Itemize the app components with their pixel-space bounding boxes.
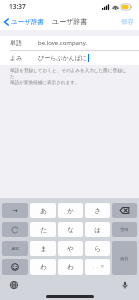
button[interactable]: ABC bbox=[2, 241, 28, 256]
button[interactable]: あ bbox=[30, 203, 56, 218]
button[interactable]: は bbox=[85, 222, 110, 237]
button[interactable]: EMOJI bbox=[2, 259, 28, 275]
button[interactable]: た bbox=[30, 222, 56, 237]
button[interactable]: か bbox=[58, 203, 83, 218]
staticText: た bbox=[40, 226, 47, 234]
button[interactable]: ま bbox=[30, 241, 56, 256]
staticText: あ bbox=[40, 207, 47, 215]
staticText: わ bbox=[40, 263, 47, 271]
button[interactable]: な bbox=[58, 222, 83, 237]
button[interactable]: ら bbox=[85, 241, 110, 256]
staticText: ら bbox=[94, 245, 101, 253]
other: Back bbox=[4, 18, 9, 26]
staticText: 単語を登録しておくと、そのよみを入力した際に登録した 単語が変換候補に表示されま… bbox=[10, 68, 129, 86]
button[interactable]: 空白 bbox=[112, 222, 137, 237]
button[interactable]: 改行 bbox=[112, 241, 137, 275]
staticText: → bbox=[12, 207, 18, 215]
button[interactable]: → bbox=[2, 203, 28, 218]
staticText: は bbox=[94, 226, 101, 234]
staticText: か bbox=[67, 207, 74, 215]
button[interactable]: さ bbox=[85, 203, 110, 218]
staticText: 、。?! bbox=[92, 264, 104, 270]
staticText: 改行 bbox=[120, 256, 129, 261]
button[interactable]: わ bbox=[58, 259, 83, 275]
button[interactable]: よみ bbox=[0, 51, 139, 65]
staticText: な bbox=[67, 226, 74, 234]
button[interactable]: Dictation bbox=[111, 277, 139, 292]
staticText: ユーザ辞書 bbox=[11, 18, 44, 26]
staticText: さ bbox=[94, 207, 101, 215]
staticText: ABC bbox=[11, 246, 20, 252]
staticText: わ bbox=[67, 263, 74, 271]
button[interactable]: 単語 bbox=[0, 36, 139, 50]
staticText: be.love.company. bbox=[38, 39, 88, 47]
staticText: びーらぶかんぱに bbox=[38, 54, 87, 62]
button[interactable]: わ bbox=[30, 259, 56, 275]
staticText: ユーザ辞書 bbox=[52, 17, 88, 26]
button[interactable]: や bbox=[58, 241, 83, 256]
staticText: ま bbox=[40, 245, 47, 253]
button[interactable]: DELETE bbox=[112, 203, 137, 218]
button[interactable]: UNDO bbox=[2, 222, 28, 237]
button[interactable]: 保存 bbox=[116, 15, 139, 29]
staticText: よみ bbox=[10, 54, 32, 62]
staticText: 13:37 bbox=[9, 2, 26, 11]
button[interactable]: Globe bbox=[0, 277, 28, 292]
staticText: 空白 bbox=[120, 227, 129, 232]
staticText: や bbox=[67, 245, 74, 253]
button[interactable]: 、。?! bbox=[85, 259, 110, 275]
staticText: 保存 bbox=[121, 18, 134, 26]
staticText: 単語 bbox=[10, 39, 32, 47]
button[interactable]: Back bbox=[0, 16, 48, 28]
